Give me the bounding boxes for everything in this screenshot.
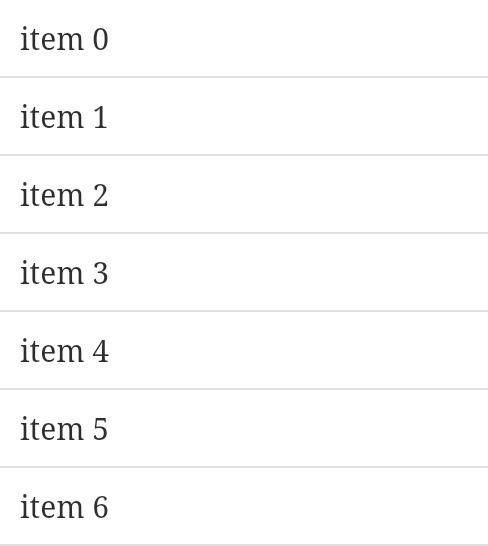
button[interactable]: item 0	[0, 0, 488, 76]
staticText: item 6	[20, 486, 110, 527]
staticText: item 2	[20, 174, 110, 215]
button[interactable]: item 5	[0, 390, 488, 466]
staticText: item 3	[20, 252, 110, 293]
staticText: item 4	[20, 330, 110, 371]
staticText: item 0	[20, 18, 110, 59]
button[interactable]: item 4	[0, 312, 488, 388]
staticText: item 5	[20, 408, 110, 449]
button[interactable]: item 6	[0, 468, 488, 544]
button[interactable]: item 1	[0, 78, 488, 154]
button[interactable]: item 3	[0, 234, 488, 310]
staticText: item 1	[20, 96, 110, 137]
button[interactable]: item 2	[0, 156, 488, 232]
